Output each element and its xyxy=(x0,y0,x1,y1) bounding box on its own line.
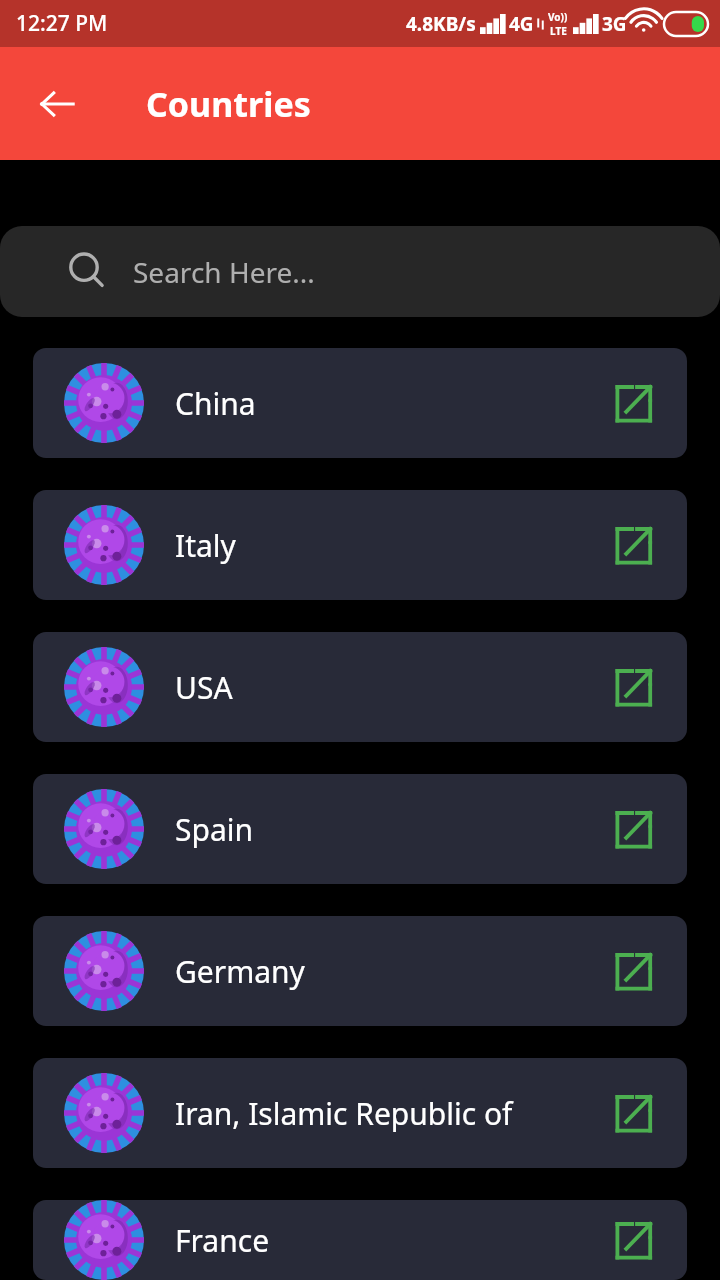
button[interactable]: Open details for Germany xyxy=(603,939,667,1003)
button[interactable]: Open details for Italy xyxy=(603,513,667,577)
button[interactable]: Open details for Spain xyxy=(603,797,667,861)
staticText: 4.8KB/s xyxy=(406,11,476,37)
button[interactable]: Iran, Islamic Republic of xyxy=(33,1058,687,1168)
staticText: 3G xyxy=(602,11,627,37)
button[interactable]: USA xyxy=(33,632,687,742)
staticText: Search Here... xyxy=(133,253,315,291)
button[interactable]: Open details for USA xyxy=(603,655,667,719)
button[interactable]: Open details for Iran, Islamic Republic … xyxy=(603,1081,667,1145)
staticText: Countries xyxy=(146,81,311,127)
button[interactable]: France xyxy=(33,1200,687,1280)
staticText: 4G xyxy=(509,11,534,37)
staticText: France xyxy=(175,1220,603,1261)
button[interactable]: Spain xyxy=(33,774,687,884)
staticText: Italy xyxy=(175,525,603,566)
staticText: China xyxy=(175,383,603,424)
button[interactable]: Search Here... xyxy=(0,226,720,317)
staticText: Germany xyxy=(175,951,603,992)
staticText: 12:27 PM xyxy=(16,9,108,38)
staticText: LTE xyxy=(550,24,567,38)
staticText: Vo)) xyxy=(548,10,568,24)
button[interactable]: Germany xyxy=(33,916,687,1026)
button[interactable]: Open details for China xyxy=(603,371,667,435)
staticText: USA xyxy=(175,667,603,708)
staticText: Spain xyxy=(175,809,603,850)
button[interactable]: Open details for France xyxy=(603,1208,667,1272)
button[interactable]: Italy xyxy=(33,490,687,600)
button[interactable]: China xyxy=(33,348,687,458)
button[interactable]: Back xyxy=(24,71,90,137)
staticText: Iran, Islamic Republic of xyxy=(175,1093,603,1134)
